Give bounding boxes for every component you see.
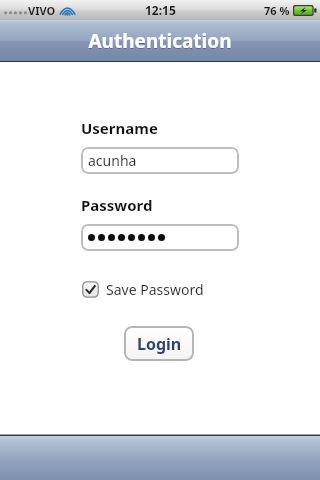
- staticText: 76 %: [264, 3, 290, 18]
- button[interactable]: [81, 224, 239, 251]
- button[interactable]: Login: [124, 326, 194, 361]
- staticText: Authentication: [88, 28, 232, 54]
- staticText: Authentication: [88, 29, 232, 55]
- staticText: Username: [81, 118, 158, 138]
- staticText: Password: [81, 195, 153, 215]
- button[interactable]: acunha: [81, 147, 239, 174]
- staticText: acunha: [88, 151, 137, 170]
- staticText: Save Password: [106, 280, 204, 299]
- button[interactable]: Save Password: [81, 278, 205, 301]
- staticText: VIVO: [28, 3, 56, 18]
- staticText: 12:15: [145, 2, 176, 18]
- staticText: Login: [137, 333, 182, 355]
